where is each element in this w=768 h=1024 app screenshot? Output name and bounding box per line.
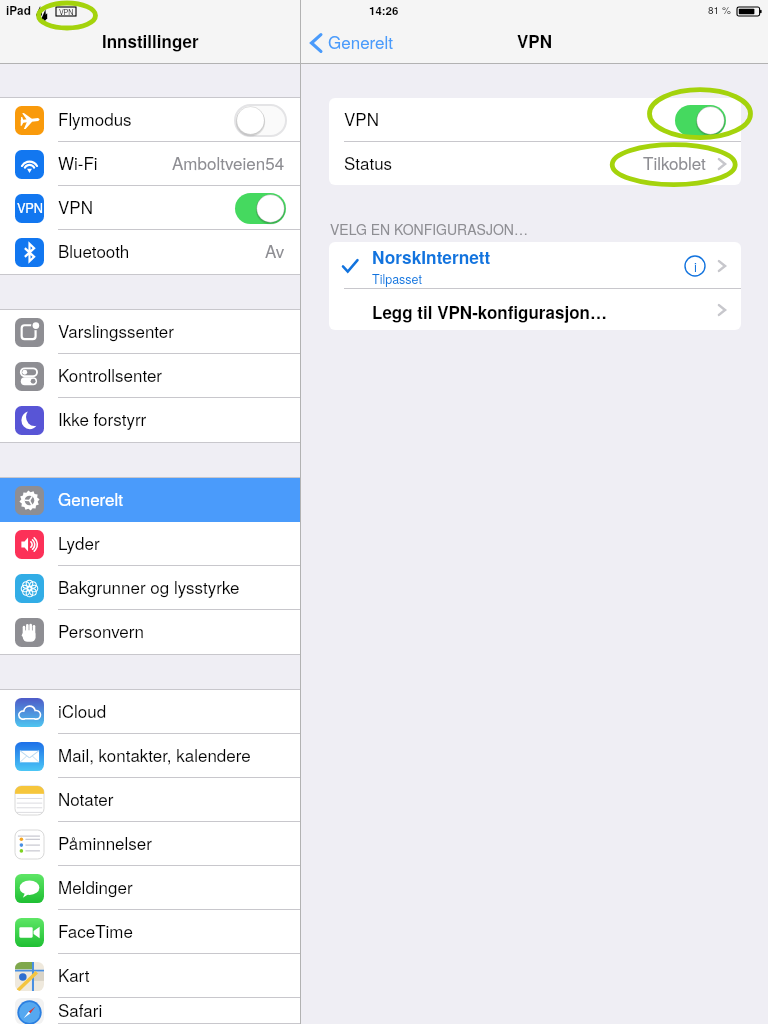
button[interactable]: Legg til VPN-konfigurasjon… [329,289,741,330]
staticText: Varslingssenter [58,318,174,342]
staticText: 81 % [708,3,731,17]
button[interactable]: Bluetooth [0,230,300,274]
staticText: Bluetooth [58,238,130,262]
button[interactable]: Kontrollsenter [0,354,300,398]
button[interactable]: Toggle off [235,105,286,136]
staticText: Påminnelser [58,830,152,854]
button[interactable]: Varslingssenter [0,310,300,354]
button[interactable]: Mail, kontakter, kalendere [0,734,300,778]
button[interactable]: Generelt [0,478,300,522]
button[interactable]: NorskInternett [329,242,741,289]
button[interactable]: Toggle on [235,193,286,224]
staticText: Ikke forstyrr [58,406,147,430]
staticText: iCloud [58,698,107,722]
button[interactable]: Ikke forstyrr [0,398,300,442]
staticText: Notater [58,786,114,810]
staticText: Kart [58,962,90,986]
staticText: Flymodus [58,106,132,130]
button[interactable]: Personvern [0,610,300,654]
button[interactable]: Notater [0,778,300,822]
button[interactable]: Meldinger [0,866,300,910]
staticText: Tilpasset [372,270,422,288]
button[interactable]: Bakgrunner og lysstyrke [0,566,300,610]
staticText: VPN [344,106,379,130]
staticText: Bakgrunner og lysstyrke [58,574,240,598]
staticText: Status [344,150,393,174]
staticText: VPN [59,7,74,16]
staticText: Kontrollsenter [58,362,163,386]
staticText: Generelt [58,486,124,510]
staticText: Safari [58,997,103,1021]
staticText: Mail, kontakter, kalendere [58,742,251,766]
button[interactable]: VPN [0,186,300,230]
staticText: iPad [6,2,31,19]
staticText: VELG EN KONFIGURASJON… [330,219,528,239]
button[interactable]: Kart [0,954,300,998]
button[interactable]: FaceTime [0,910,300,954]
button[interactable]: Flymodus [0,98,300,142]
button[interactable]: Safari [0,998,300,1024]
staticText: Av [265,238,285,262]
button[interactable]: Lyder [0,522,300,566]
staticText: Amboltveien54 [172,150,285,174]
button[interactable]: iCloud [0,690,300,734]
button[interactable]: Toggle on [675,105,726,136]
staticText: Lyder [58,530,100,554]
staticText: VPN [58,194,93,218]
staticText: Wi-Fi [58,150,98,174]
button[interactable]: Påminnelser [0,822,300,866]
staticText: FaceTime [58,918,133,942]
staticText: Tilkoblet [643,150,706,174]
staticText: NorskInternett [372,245,491,270]
staticText: Legg til VPN-konfigurasjon… [372,300,607,324]
staticText: VPN [17,198,43,216]
staticText: Meldinger [58,874,133,898]
staticText: Personvern [58,618,144,642]
button[interactable]: VPN [329,98,741,142]
button[interactable]: Wi-Fi [0,142,300,186]
staticText: 14:26 [369,2,399,18]
button[interactable]: Generelt [309,22,394,64]
staticText: Innstillinger [102,29,199,53]
staticText: i [694,257,697,276]
button[interactable]: More info [684,255,706,277]
staticText: Generelt [328,29,394,53]
button[interactable]: Status [329,142,741,185]
staticText: VPN [517,29,552,53]
